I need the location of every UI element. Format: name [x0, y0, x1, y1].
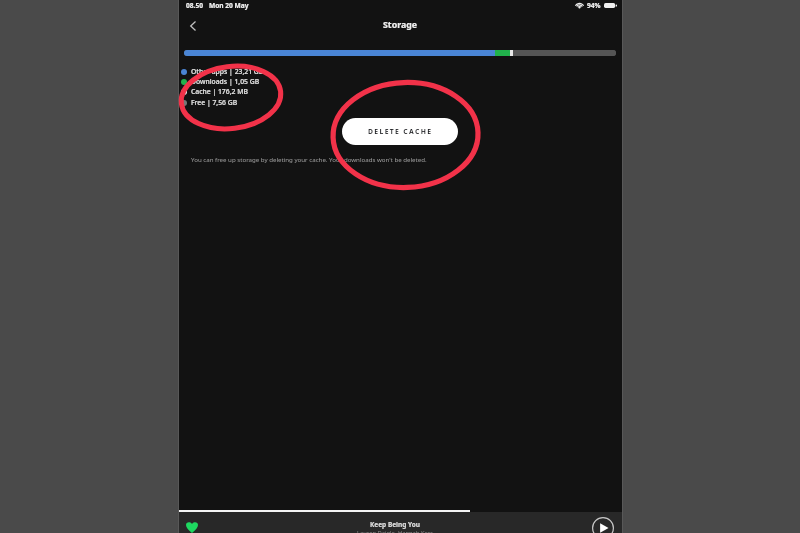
staticText: Storage	[383, 19, 418, 31]
staticText: DELETE CACHE	[368, 127, 433, 136]
button[interactable]: Keep Being You	[270, 512, 520, 533]
staticText: Cache | 176,2 MB	[191, 87, 248, 96]
staticText: 94%	[587, 1, 601, 10]
staticText: You can free up storage by deleting your…	[191, 155, 427, 163]
staticText: Free | 7,56 GB	[191, 98, 238, 107]
button[interactable]: Like	[184, 519, 200, 533]
staticText: Keep Being You	[370, 520, 421, 529]
button[interactable]: Back	[182, 15, 204, 37]
staticText: 08.50	[186, 1, 203, 10]
staticText: Mon 20 May	[209, 1, 249, 10]
button[interactable]: DELETE CACHE	[342, 118, 458, 145]
button[interactable]: Play	[590, 517, 615, 533]
staticText: Downloads | 1,05 GB	[191, 77, 260, 86]
staticText: Lauren Daigle, Hannah Kerr	[357, 529, 433, 533]
staticText: Other apps | 23,21 GB	[191, 67, 264, 76]
